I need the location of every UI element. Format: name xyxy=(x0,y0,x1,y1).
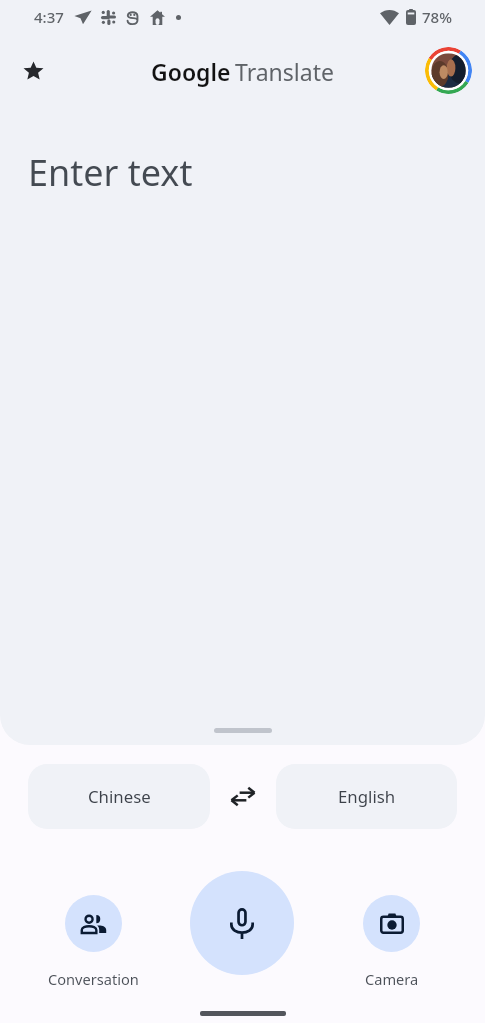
staticText: 4:37 xyxy=(34,7,64,27)
button[interactable]: Voice input xyxy=(190,871,294,975)
button[interactable]: Saved translations xyxy=(13,51,53,91)
button[interactable]: Swap languages xyxy=(210,764,276,829)
button[interactable]: Camera xyxy=(363,895,420,989)
staticText: 78% xyxy=(422,7,452,27)
staticText: Google xyxy=(151,56,231,87)
button[interactable]: Enter text xyxy=(0,100,485,700)
staticText: Conversation xyxy=(48,969,139,989)
staticText: Enter text xyxy=(28,148,193,197)
staticText: English xyxy=(338,785,396,808)
button[interactable]: Account xyxy=(425,47,472,94)
button[interactable]: Chinese xyxy=(28,764,210,829)
staticText: Chinese xyxy=(88,785,151,808)
button[interactable]: Conversation xyxy=(48,895,139,989)
staticText: Translate xyxy=(235,56,334,87)
staticText: Camera xyxy=(365,969,419,989)
button[interactable]: English xyxy=(276,764,457,829)
